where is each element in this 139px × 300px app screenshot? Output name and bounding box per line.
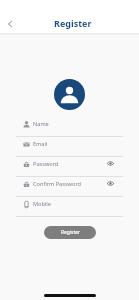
button[interactable]: Show password xyxy=(104,177,117,190)
button[interactable]: Name xyxy=(16,117,123,137)
button[interactable]: Confirm Password xyxy=(16,177,123,197)
button[interactable]: Email xyxy=(16,137,123,157)
staticText: Mobile xyxy=(33,200,51,208)
button[interactable]: Show password xyxy=(104,157,117,170)
button[interactable]: Add profile picture xyxy=(54,79,85,110)
staticText: Register xyxy=(61,229,80,236)
staticText: Name xyxy=(33,120,49,128)
staticText: Password xyxy=(33,160,59,168)
button[interactable]: Password xyxy=(16,157,123,177)
staticText: Register xyxy=(54,17,92,29)
staticText: Email xyxy=(33,140,48,148)
button[interactable]: Register xyxy=(44,226,96,239)
button[interactable]: Back xyxy=(2,16,18,32)
button[interactable]: Mobile xyxy=(16,197,123,217)
staticText: Confirm Password xyxy=(33,180,82,188)
